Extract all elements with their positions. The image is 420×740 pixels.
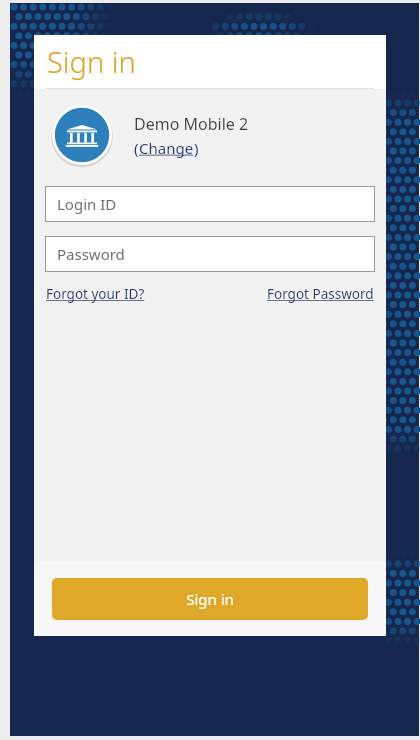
staticText: ( bbox=[134, 138, 139, 158]
button[interactable]: Sign in bbox=[52, 578, 368, 620]
button[interactable]: Forgot your ID? bbox=[46, 285, 145, 303]
staticText: Password bbox=[57, 244, 125, 264]
staticText: Demo Mobile 2 bbox=[134, 113, 249, 135]
button[interactable]: Change bbox=[139, 138, 194, 158]
button[interactable]: Password bbox=[45, 236, 375, 272]
staticText: Change bbox=[139, 138, 194, 158]
staticText: Forgot your ID? bbox=[46, 285, 145, 303]
staticText: Login ID bbox=[57, 194, 117, 214]
staticText: Sign in bbox=[186, 589, 234, 609]
button[interactable]: Selected bank: Demo Mobile 2 bbox=[50, 103, 114, 167]
button[interactable]: Login ID bbox=[45, 186, 375, 222]
staticText: Forgot Password bbox=[267, 285, 374, 303]
staticText: ) bbox=[194, 138, 199, 158]
button[interactable]: Forgot Password bbox=[267, 285, 374, 303]
staticText: Sign in bbox=[47, 42, 136, 81]
